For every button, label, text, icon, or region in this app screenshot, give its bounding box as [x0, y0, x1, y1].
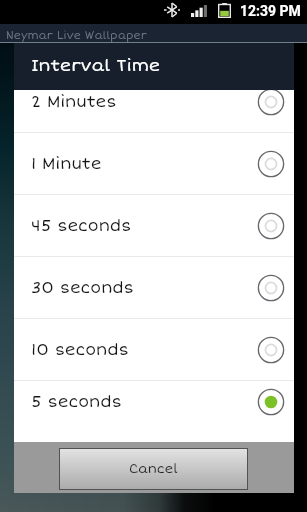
other: Signal strength	[191, 5, 207, 17]
staticText: Interval Time	[31, 55, 160, 76]
other: Battery	[218, 3, 231, 18]
staticText: 30 seconds	[31, 278, 135, 298]
button[interactable]: Cancel	[60, 449, 247, 489]
other: Bluetooth	[164, 3, 180, 17]
staticText: 5 seconds	[31, 392, 122, 412]
staticText: 2 Minutes	[31, 92, 117, 112]
staticText: 1 Minute	[31, 154, 102, 174]
button[interactable]: 5 seconds	[14, 381, 294, 423]
staticText: 10 seconds	[31, 340, 130, 360]
staticText: 45 seconds	[31, 216, 132, 236]
button[interactable]: 2 Minutes	[14, 90, 294, 133]
staticText: Neymar Live Wallpaper	[6, 29, 147, 43]
button[interactable]: 10 seconds	[14, 319, 294, 381]
staticText: Cancel	[129, 461, 178, 477]
button[interactable]: 45 seconds	[14, 195, 294, 257]
staticText: 12:39 PM	[240, 3, 301, 19]
button[interactable]: 30 seconds	[14, 257, 294, 319]
button[interactable]: 1 Minute	[14, 133, 294, 195]
